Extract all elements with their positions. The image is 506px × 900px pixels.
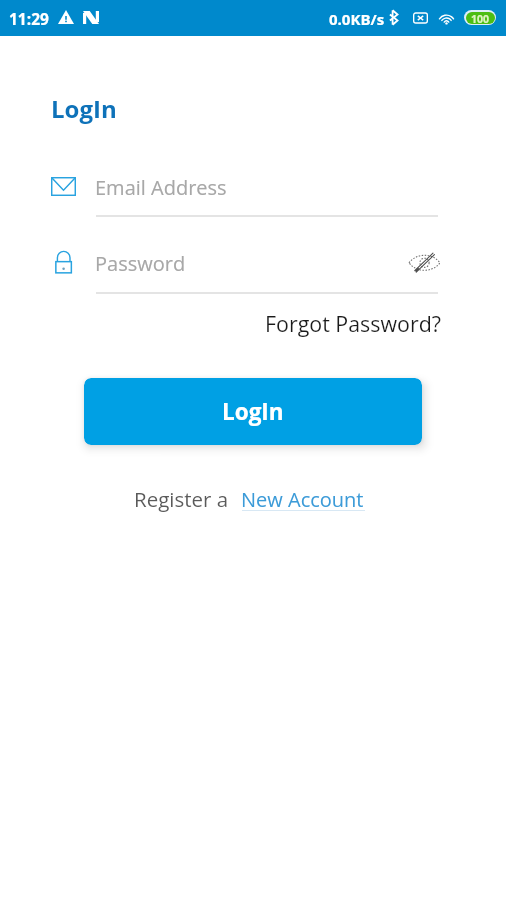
staticText: 11:29 bbox=[9, 8, 49, 29]
staticText: New Account bbox=[241, 486, 364, 513]
staticText: Password bbox=[95, 250, 186, 277]
staticText: 0.0KB/s bbox=[329, 9, 385, 29]
staticText: LogIn bbox=[51, 92, 117, 125]
button[interactable]: Show password bbox=[406, 248, 442, 278]
staticText: Email Address bbox=[95, 174, 227, 201]
staticText: LogIn bbox=[222, 396, 284, 427]
staticText: Register a bbox=[134, 485, 229, 513]
button[interactable]: New Account bbox=[241, 486, 364, 513]
button[interactable]: Forgot Password? bbox=[261, 304, 445, 343]
button[interactable]: LogIn bbox=[84, 378, 422, 445]
staticText: 100 bbox=[471, 12, 490, 24]
staticText: Forgot Password? bbox=[265, 309, 441, 338]
